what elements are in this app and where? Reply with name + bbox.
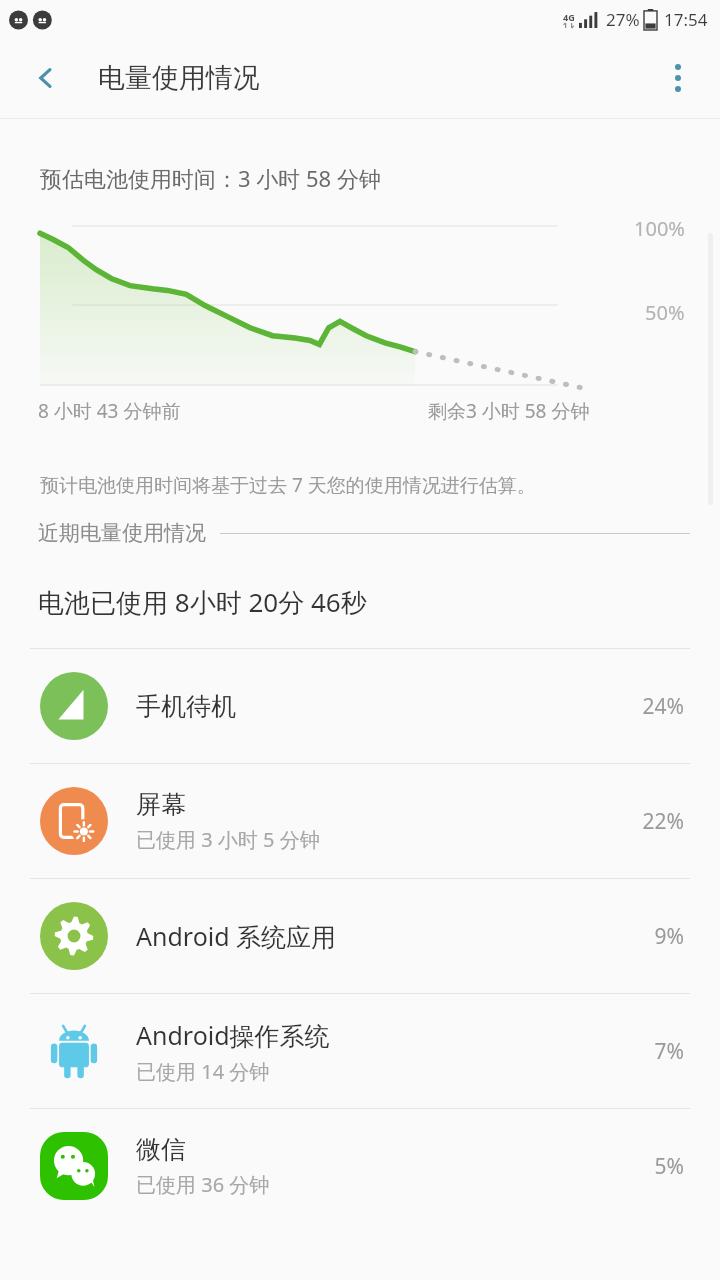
staticText: 剩余3 小时 58 分钟	[428, 398, 590, 424]
staticText: 9%	[654, 922, 684, 951]
staticText: 屏幕	[136, 789, 186, 820]
staticText: 已使用 14 分钟	[136, 1058, 270, 1085]
staticText: 预计电池使用时间将基于过去 7 天您的使用情况进行估算。	[40, 472, 536, 498]
staticText: 5%	[654, 1152, 684, 1181]
staticText: 17:54	[664, 8, 708, 31]
button[interactable]: Android 系统应用	[0, 879, 720, 993]
staticText: 已使用 36 分钟	[136, 1171, 270, 1198]
staticText: 微信	[136, 1134, 186, 1165]
staticText: 已使用 3 小时 5 分钟	[136, 826, 320, 853]
staticText: 近期电量使用情况	[38, 520, 206, 546]
button[interactable]: 屏幕	[0, 764, 720, 878]
staticText: 22%	[642, 807, 684, 836]
button[interactable]: Back	[14, 46, 78, 110]
button[interactable]: 微信	[0, 1109, 720, 1223]
staticText: 预估电池使用时间：3 小时 58 分钟	[40, 163, 381, 193]
button[interactable]: Android操作系统	[0, 994, 720, 1108]
staticText: 7%	[654, 1037, 684, 1066]
button[interactable]: 手机待机	[0, 649, 720, 763]
staticText: 4G	[563, 11, 575, 23]
staticText: 50%	[645, 299, 685, 326]
staticText: 100%	[634, 215, 685, 242]
button[interactable]: More options	[646, 46, 710, 110]
staticText: 手机待机	[136, 691, 236, 722]
staticText: 电量使用情况	[98, 61, 260, 95]
staticText: Android操作系统	[136, 1018, 330, 1052]
staticText: 24%	[642, 692, 684, 721]
staticText: 27%	[606, 8, 640, 31]
staticText: Android 系统应用	[136, 919, 337, 953]
staticText: 电池已使用 8小时 20分 46秒	[38, 584, 367, 620]
staticText: 8 小时 43 分钟前	[38, 398, 181, 424]
